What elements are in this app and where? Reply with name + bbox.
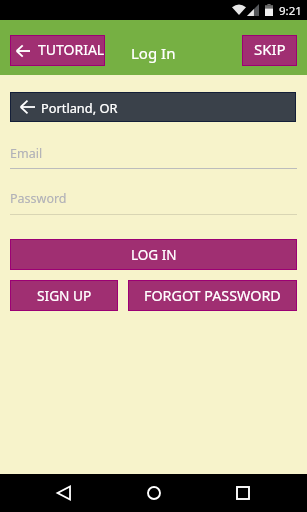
staticText: Log In xyxy=(131,43,176,63)
button[interactable]: LOG IN xyxy=(11,240,296,269)
staticText: SKIP xyxy=(254,39,286,59)
staticText: FORGOT PASSWORD xyxy=(144,286,281,305)
button[interactable]: FORGOT PASSWORD xyxy=(129,281,296,310)
button[interactable]: TUTORIAL xyxy=(11,36,104,65)
button[interactable]: Back xyxy=(34,474,94,512)
staticText: Portland, OR xyxy=(41,99,118,116)
button[interactable]: SIGN UP xyxy=(11,281,117,310)
staticText: Email xyxy=(10,145,43,162)
staticText: 9:21 xyxy=(279,3,302,19)
staticText: SIGN UP xyxy=(37,286,92,305)
button[interactable]: Recents xyxy=(213,474,273,512)
button[interactable]: SKIP xyxy=(243,36,296,65)
button[interactable]: Portland, OR xyxy=(11,93,295,121)
button[interactable]: Home xyxy=(123,474,184,512)
staticText: LOG IN xyxy=(131,246,177,264)
staticText: Password xyxy=(10,190,67,207)
staticText: TUTORIAL xyxy=(38,40,105,59)
